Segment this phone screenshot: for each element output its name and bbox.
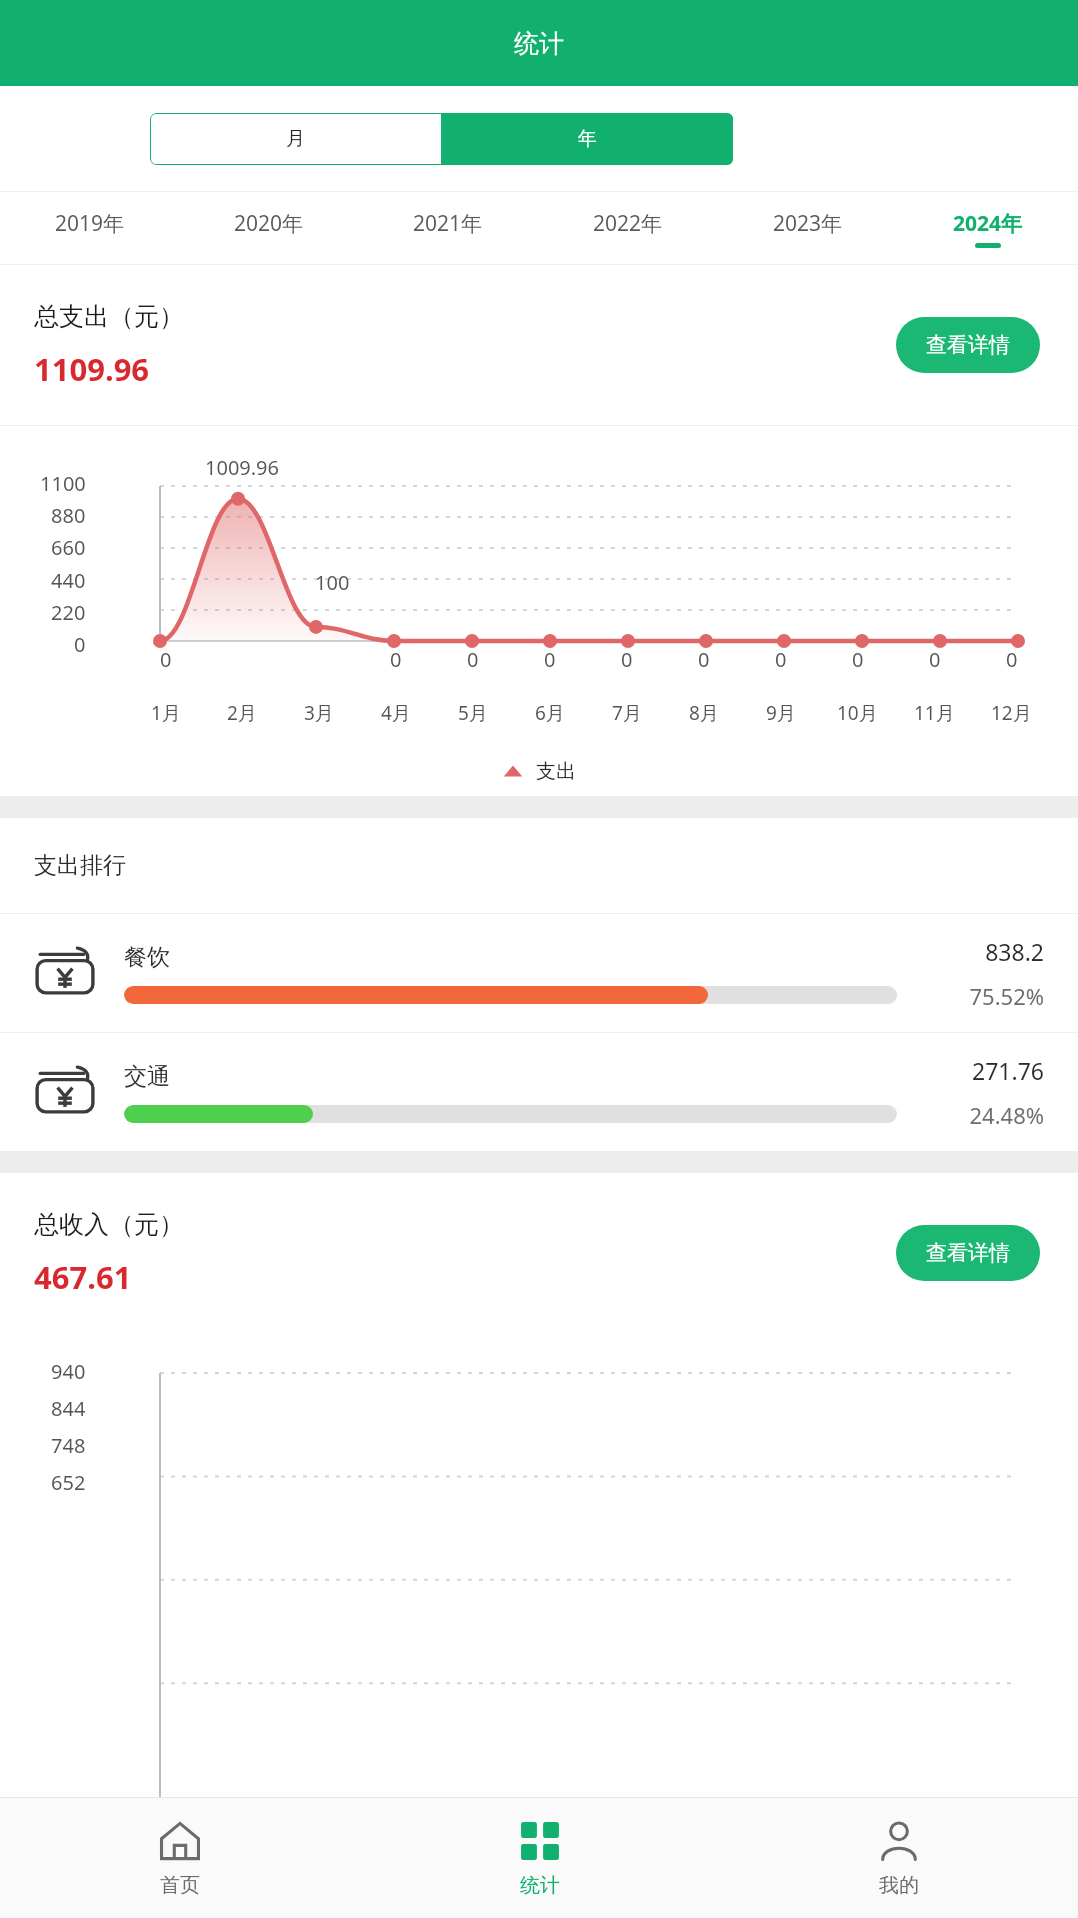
- staticText: 4月: [381, 700, 411, 726]
- staticText: 我的: [879, 1873, 919, 1898]
- button[interactable]: 我的: [719, 1798, 1078, 1918]
- staticText: 24.48%: [969, 1100, 1044, 1130]
- staticText: 统计: [520, 1873, 560, 1898]
- staticText: 2019年: [55, 209, 125, 238]
- button[interactable]: 首页: [0, 1798, 360, 1918]
- staticText: 652: [51, 1469, 86, 1496]
- staticText: 0: [390, 646, 402, 673]
- staticText: 440: [51, 567, 86, 594]
- staticText: 总收入（元）: [34, 1209, 184, 1240]
- staticText: 467.61: [34, 1256, 132, 1298]
- staticText: 1109.96: [34, 348, 150, 390]
- staticText: 8月: [689, 700, 719, 726]
- staticText: 0: [160, 646, 172, 673]
- staticText: 月: [286, 127, 305, 151]
- button[interactable]: 餐饮: [0, 914, 1078, 1032]
- staticText: 838.2: [985, 936, 1044, 967]
- staticText: 支出: [536, 759, 576, 784]
- staticText: 0: [1006, 646, 1018, 673]
- staticText: 首页: [160, 1873, 200, 1898]
- staticText: 660: [51, 534, 86, 561]
- staticText: 75.52%: [969, 981, 1044, 1011]
- staticText: 220: [51, 599, 86, 626]
- staticText: 271.76: [972, 1055, 1044, 1086]
- staticText: 2023年: [773, 209, 843, 238]
- staticText: 交通: [124, 1062, 170, 1091]
- other: 我的: [877, 1819, 921, 1863]
- staticText: 1009.96: [205, 454, 279, 481]
- other: 首页: [158, 1819, 202, 1863]
- other: 统计: [518, 1819, 562, 1863]
- staticText: 0: [929, 646, 941, 673]
- staticText: 查看详情: [926, 1240, 1010, 1266]
- button[interactable]: 2023年: [718, 192, 898, 264]
- staticText: 餐饮: [124, 943, 170, 972]
- staticText: 880: [51, 502, 86, 529]
- button[interactable]: 统计: [360, 1798, 719, 1918]
- button[interactable]: 2020年: [179, 192, 358, 264]
- staticText: 统计: [514, 28, 564, 59]
- staticText: 10月: [837, 700, 878, 726]
- button[interactable]: 年: [441, 113, 733, 165]
- staticText: 1100: [40, 470, 86, 497]
- staticText: 5月: [458, 700, 488, 726]
- staticText: 总支出（元）: [34, 301, 184, 332]
- staticText: 2月: [227, 700, 257, 726]
- staticText: 0: [74, 631, 86, 658]
- button[interactable]: 2019年: [0, 192, 179, 264]
- staticText: 7月: [612, 700, 642, 726]
- staticText: 940: [51, 1358, 86, 1385]
- staticText: 11月: [914, 700, 955, 726]
- staticText: 3月: [304, 700, 334, 726]
- button[interactable]: 2021年: [358, 192, 538, 264]
- staticText: 0: [698, 646, 710, 673]
- staticText: 0: [775, 646, 787, 673]
- staticText: 0: [467, 646, 479, 673]
- button[interactable]: 查看详情: [896, 317, 1040, 373]
- staticText: 年: [578, 127, 597, 151]
- staticText: 2020年: [234, 209, 304, 238]
- staticText: 9月: [766, 700, 796, 726]
- staticText: 2021年: [413, 209, 483, 238]
- staticText: 查看详情: [926, 332, 1010, 358]
- button[interactable]: 2024年: [898, 192, 1078, 264]
- staticText: 100: [315, 569, 350, 596]
- staticText: 0: [544, 646, 556, 673]
- button[interactable]: 交通: [0, 1033, 1078, 1151]
- staticText: 1月: [151, 700, 181, 726]
- button[interactable]: 2022年: [538, 192, 718, 264]
- staticText: 6月: [535, 700, 565, 726]
- staticText: 2022年: [593, 209, 663, 238]
- staticText: 0: [852, 646, 864, 673]
- staticText: 844: [51, 1395, 86, 1422]
- staticText: 2024年: [953, 209, 1023, 238]
- staticText: 748: [51, 1432, 86, 1459]
- staticText: 0: [621, 646, 633, 673]
- staticText: 12月: [991, 700, 1032, 726]
- button[interactable]: 月: [150, 113, 441, 165]
- button[interactable]: 查看详情: [896, 1225, 1040, 1281]
- staticText: 支出排行: [34, 851, 126, 880]
